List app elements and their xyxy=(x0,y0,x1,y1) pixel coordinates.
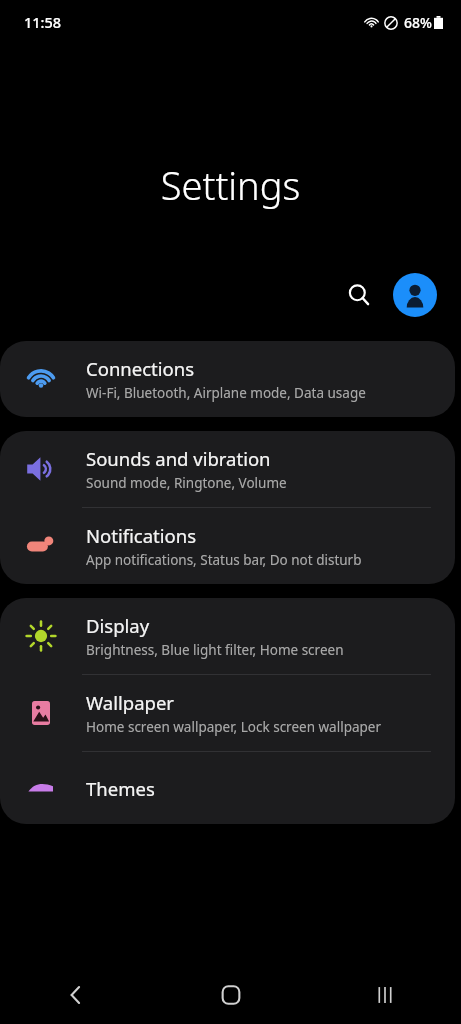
button[interactable]: Wallpaper xyxy=(0,675,455,751)
button[interactable]: Sounds and vibration xyxy=(0,431,455,507)
staticText: Connections xyxy=(86,356,195,381)
staticText: Sounds and vibration xyxy=(86,446,271,471)
staticText: Brightness, Blue light filter, Home scre… xyxy=(86,641,344,659)
staticText: Notifications xyxy=(86,523,197,548)
staticText: Themes xyxy=(86,776,155,801)
button[interactable]: Notifications xyxy=(0,508,455,584)
staticText: Display xyxy=(86,613,150,638)
button[interactable]: Account xyxy=(393,273,437,317)
staticText: Wi-Fi, Bluetooth, Airplane mode, Data us… xyxy=(86,384,366,402)
button[interactable]: Home xyxy=(207,971,255,1019)
button[interactable]: Recents xyxy=(361,971,409,1019)
button[interactable]: Search xyxy=(335,271,383,319)
staticText: Sound mode, Ringtone, Volume xyxy=(86,474,287,492)
staticText: 68% xyxy=(404,13,432,32)
button[interactable]: Themes xyxy=(0,752,455,824)
button[interactable]: Back xyxy=(52,971,100,1019)
staticText: Home screen wallpaper, Lock screen wallp… xyxy=(86,718,382,736)
staticText: Settings xyxy=(0,159,461,211)
button[interactable]: Display xyxy=(0,598,455,674)
staticText: App notifications, Status bar, Do not di… xyxy=(86,551,362,569)
staticText: Wallpaper xyxy=(86,690,174,715)
staticText: 11:58 xyxy=(24,12,62,32)
button[interactable]: Connections xyxy=(0,341,455,417)
